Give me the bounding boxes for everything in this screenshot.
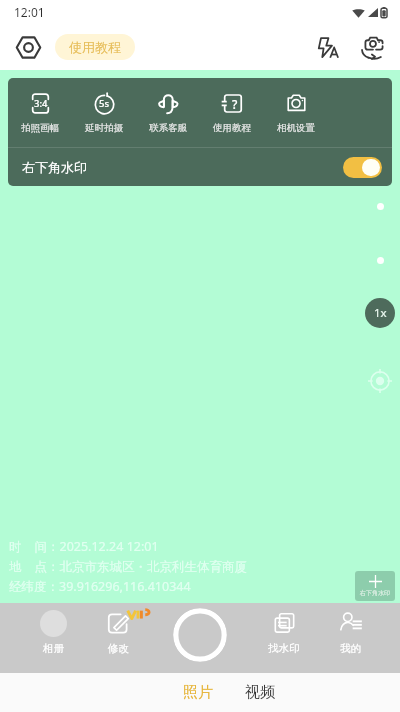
button[interactable]: 找水印 [256,606,312,659]
staticText: 使用教程 [69,39,121,55]
button[interactable]: ? [200,92,264,134]
staticText: 延时拍摄 [85,122,123,134]
staticText: 拍照画幅 [21,122,59,134]
staticText: 使用教程 [213,122,251,134]
staticText: ? [232,96,238,112]
button[interactable]: 我的 [322,606,378,659]
staticText: 时 间：2025.12.24 12:01 [9,538,159,555]
button[interactable]: 视频 [229,673,291,712]
staticText: 修改 [108,642,129,655]
staticText: 右下角水印 [22,159,87,175]
button[interactable]: Flash auto [312,31,344,63]
button[interactable]: Settings [13,32,43,62]
staticText: 5s [99,97,110,110]
staticText: 经纬度：39.916296,116.410344 [9,578,191,595]
staticText: 找水印 [268,642,300,655]
staticText: 我的 [340,642,361,655]
button[interactable]: 右下角水印 [8,148,392,186]
button[interactable]: 1x [365,298,395,328]
staticText: 联系客服 [149,122,187,134]
staticText: 相册 [43,642,64,655]
button[interactable]: Shutter [173,608,227,662]
button[interactable]: 修改 [90,606,146,659]
button[interactable]: Switch camera [358,31,390,63]
button[interactable]: 使用教程 [55,34,135,60]
button[interactable]: 照片 [167,673,229,712]
button[interactable]: 相机设置 [264,92,328,134]
staticText: 照片 [183,683,213,702]
staticText: 右下角水印 [360,589,390,597]
button[interactable]: 5s [72,92,136,134]
staticText: 地 点：北京市东城区・北京利生体育商厦 [9,558,248,575]
button[interactable]: 联系客服 [136,92,200,134]
staticText: 3:4 [34,97,48,110]
staticText: 视频 [245,683,275,702]
button[interactable]: Add watermark [355,571,395,601]
button[interactable]: 相册 [25,606,81,659]
button[interactable]: 3:4 [8,92,72,134]
staticText: 相机设置 [277,122,315,134]
staticText: 12:01 [14,4,45,20]
staticText: 1x [374,305,387,321]
